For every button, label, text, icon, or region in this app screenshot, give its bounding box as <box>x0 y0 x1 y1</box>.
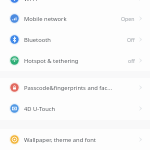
staticText: Off <box>127 36 135 43</box>
button[interactable]: Bluetooth <box>0 29 150 50</box>
staticText: Wallpaper, theme and font <box>24 136 138 144</box>
other: Open Wallpaper, theme and font <box>138 137 143 142</box>
staticText: Wi-Fi <box>24 0 138 3</box>
button[interactable]: Hotspot & tethering <box>0 50 150 71</box>
button[interactable]: Passcode&fingerprints and fac... <box>0 77 150 98</box>
other: Open Mobile network <box>138 16 143 21</box>
other: Open Wi-Fi <box>138 0 143 1</box>
staticText: Mobile network <box>24 15 121 23</box>
other: Open 4D U-Touch <box>138 106 143 111</box>
staticText: off <box>128 57 135 64</box>
other: Open Hotspot & tethering <box>138 58 143 63</box>
button[interactable]: Mobile network <box>0 8 150 29</box>
staticText: 4D U-Touch <box>24 105 138 113</box>
staticText: Open <box>121 15 135 22</box>
staticText: Hotspot & tethering <box>24 57 128 65</box>
staticText: Passcode&fingerprints and fac... <box>24 84 138 92</box>
button[interactable]: Wi-Fi <box>0 0 150 9</box>
staticText: Bluetooth <box>24 36 127 44</box>
button[interactable]: 4D U-Touch <box>0 98 150 119</box>
other: Open Passcode&fingerprints and fac... <box>138 85 143 90</box>
other: Open Bluetooth <box>138 37 143 42</box>
button[interactable]: Wallpaper, theme and font <box>0 129 150 150</box>
